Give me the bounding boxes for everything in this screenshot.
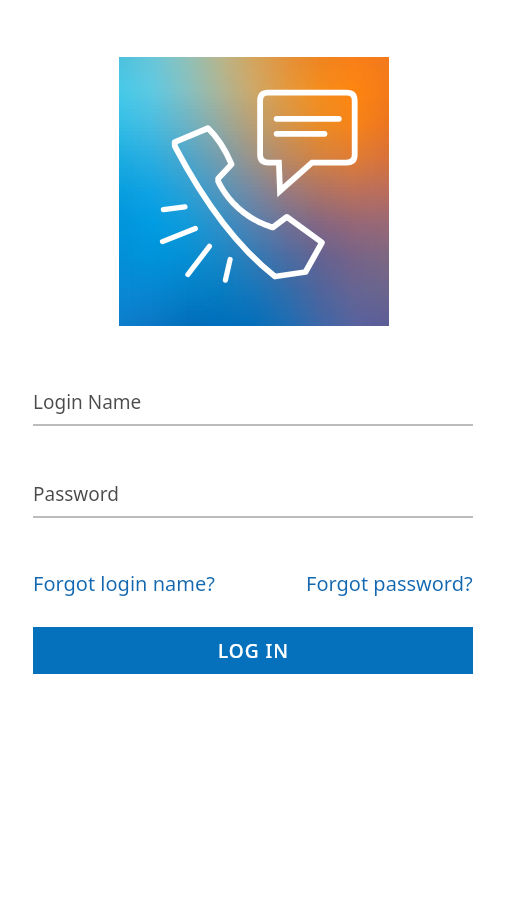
button[interactable]: Password: [33, 481, 119, 507]
staticText: Password: [33, 481, 119, 507]
button[interactable]: Forgot password?: [306, 570, 473, 597]
button[interactable]: Forgot login name?: [33, 570, 215, 597]
staticText: Forgot login name?: [33, 570, 215, 597]
staticText: Forgot password?: [306, 570, 473, 597]
staticText: Login Name: [33, 389, 142, 415]
button[interactable]: LOG IN: [33, 627, 473, 674]
button[interactable]: Login Name: [33, 389, 142, 415]
staticText: LOG IN: [218, 638, 289, 664]
